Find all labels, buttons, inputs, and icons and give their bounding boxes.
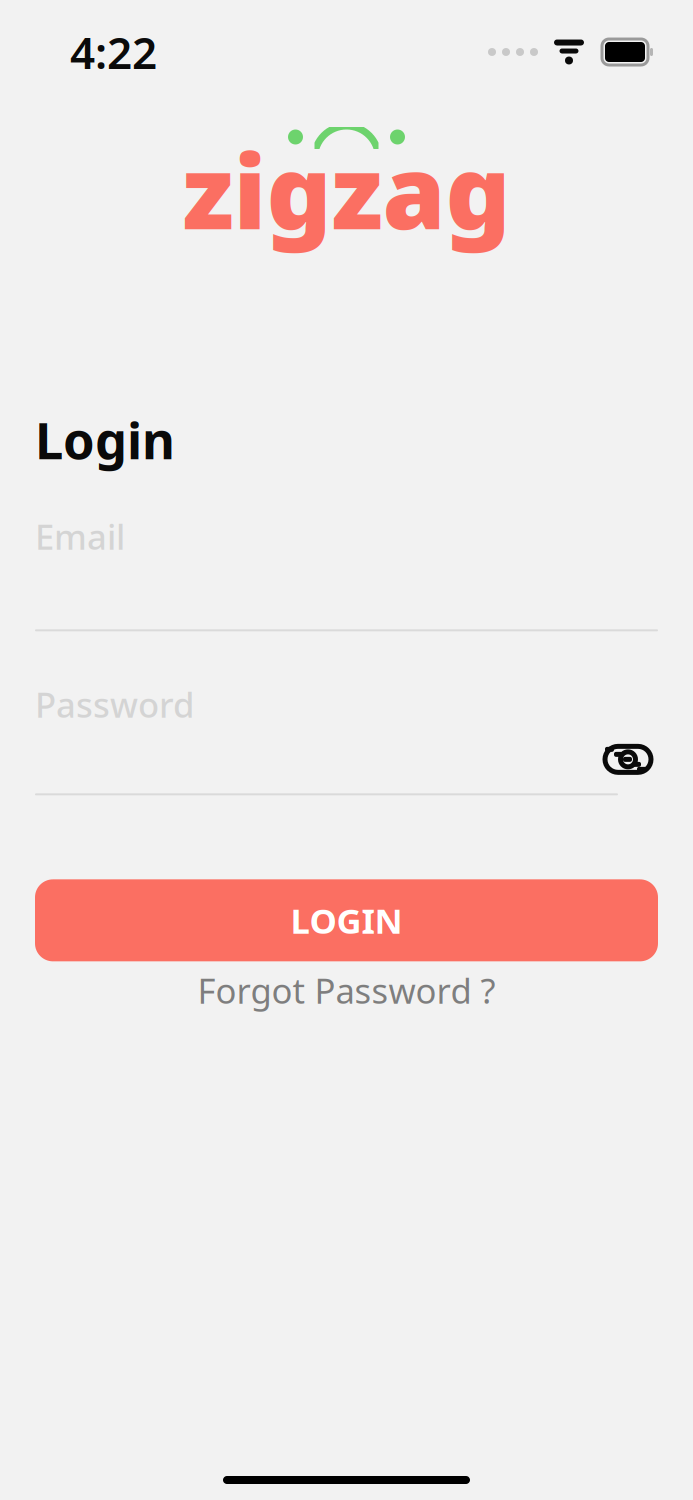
staticText: Email xyxy=(35,513,125,559)
button[interactable]: LOGIN xyxy=(35,879,658,961)
staticText: zigzag xyxy=(182,123,510,257)
staticText: LOGIN xyxy=(290,897,402,943)
staticText: Forgot Password ? xyxy=(197,967,495,1013)
button[interactable]: Forgot Password ? xyxy=(35,967,658,1013)
staticText: Login xyxy=(35,406,175,473)
button[interactable]: Show password xyxy=(598,733,658,785)
staticText: 4:22 xyxy=(70,23,157,81)
staticText: Password xyxy=(35,681,194,727)
